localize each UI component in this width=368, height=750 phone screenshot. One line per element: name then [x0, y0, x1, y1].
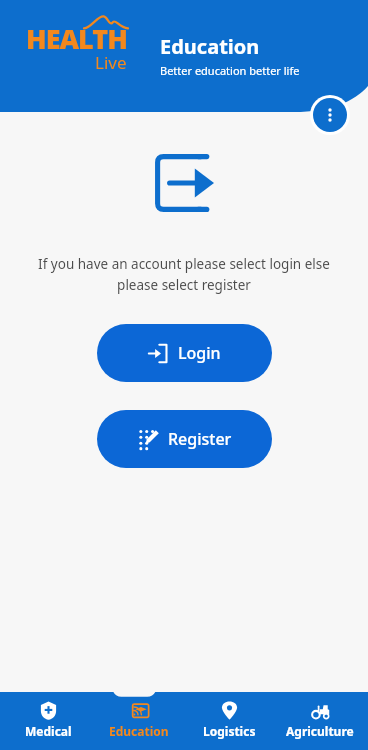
staticText: HEALTH [26, 20, 127, 57]
staticText: Medical [25, 723, 72, 739]
button[interactable]: Logistics [186, 701, 272, 750]
staticText: Login [178, 342, 221, 364]
staticText: Education [160, 33, 260, 60]
staticText: Live [95, 51, 127, 74]
button[interactable]: Medical [5, 701, 91, 750]
button[interactable]: More options [313, 98, 347, 132]
button[interactable]: Education [96, 701, 182, 750]
staticText: Agriculture [286, 723, 354, 739]
staticText: Logistics [203, 723, 256, 739]
staticText: If you have an account please select log… [16, 255, 352, 294]
button[interactable]: Register [97, 410, 272, 468]
staticText: Register [168, 428, 232, 450]
staticText: Education [109, 723, 169, 739]
staticText: Better education better life [160, 63, 300, 78]
button[interactable]: Login [97, 324, 272, 382]
button[interactable]: Agriculture [277, 701, 363, 750]
